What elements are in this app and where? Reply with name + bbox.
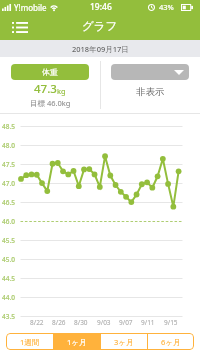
- staticText: グラフ: [82, 19, 118, 33]
- staticText: 非表示: [136, 86, 165, 98]
- staticText: kg: [57, 86, 66, 96]
- button[interactable]: 体重: [11, 64, 89, 80]
- staticText: 19:46: [90, 1, 112, 13]
- button[interactable]: Select graph type: [111, 64, 189, 80]
- staticText: 48.5: [2, 122, 15, 131]
- staticText: 8/26: [52, 318, 66, 327]
- staticText: 44.5: [2, 274, 15, 283]
- staticText: 46.0: [2, 217, 15, 226]
- button[interactable]: 6ヶ月: [148, 333, 194, 350]
- button[interactable]: 1週間: [6, 333, 53, 350]
- staticText: 9/11: [141, 318, 155, 327]
- button[interactable]: 3ヶ月: [101, 333, 147, 350]
- staticText: 6ヶ月: [161, 337, 181, 347]
- staticText: Y!mobile: [14, 2, 47, 13]
- staticText: 47.5: [2, 160, 15, 169]
- staticText: 45.0: [2, 255, 15, 264]
- button[interactable]: Menu: [0, 14, 36, 40]
- staticText: 9/07: [119, 318, 133, 327]
- staticText: 8/30: [74, 318, 88, 327]
- staticText: 目標 46.0kg: [30, 98, 71, 108]
- staticText: 48.0: [2, 141, 15, 150]
- staticText: 体重: [42, 67, 58, 77]
- staticText: 47.0: [2, 179, 15, 188]
- staticText: 2018年09月17日: [72, 44, 129, 54]
- staticText: 9/15: [164, 318, 178, 327]
- staticText: 47.3: [34, 81, 57, 97]
- staticText: 45.5: [2, 236, 15, 245]
- staticText: 43.5: [2, 312, 15, 321]
- staticText: 3ヶ月: [114, 337, 134, 347]
- staticText: 1週間: [20, 337, 40, 347]
- staticText: 44.0: [2, 293, 15, 302]
- staticText: 1ヶ月: [67, 337, 87, 347]
- staticText: 9/03: [97, 318, 111, 327]
- staticText: 43%: [159, 2, 174, 12]
- staticText: 8/22: [30, 318, 44, 327]
- button[interactable]: 1ヶ月: [54, 333, 100, 350]
- staticText: 46.5: [2, 198, 15, 207]
